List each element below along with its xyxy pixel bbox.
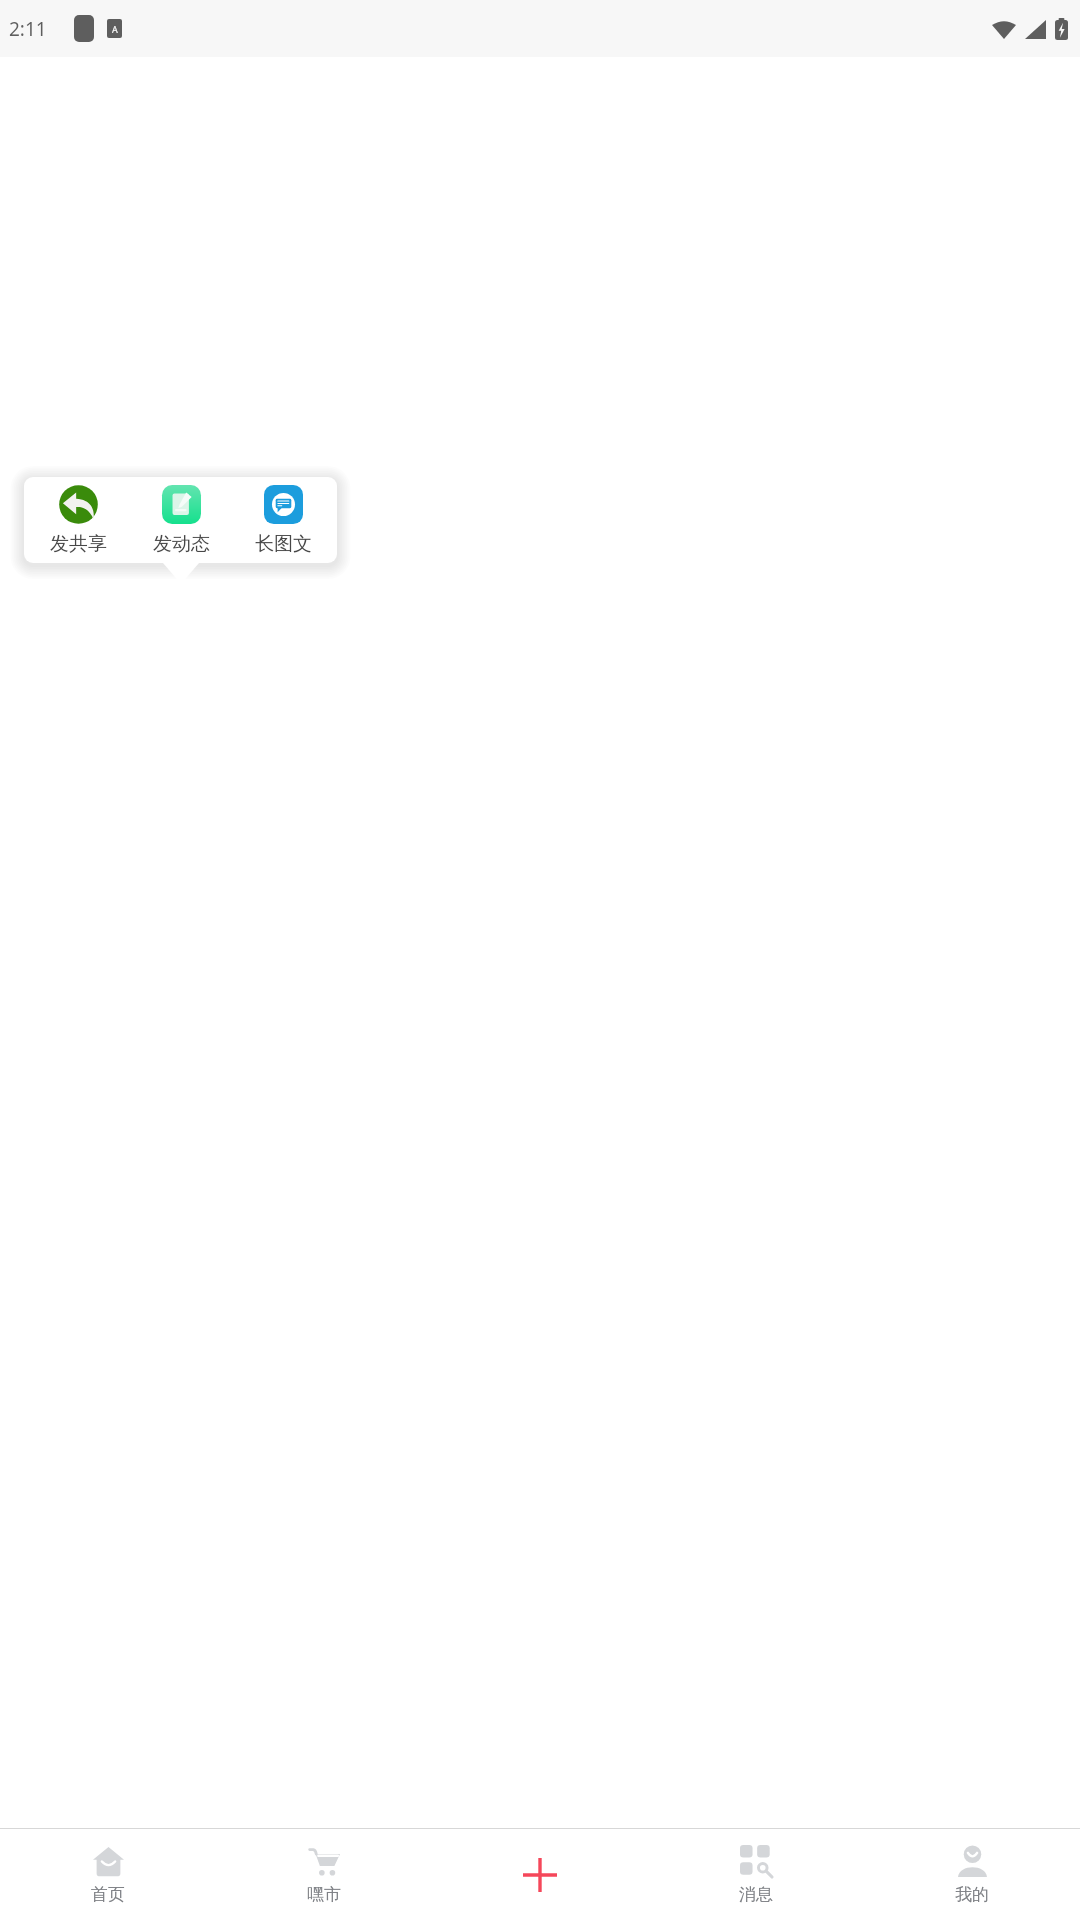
staticText: 我的 — [955, 1884, 989, 1905]
staticText: A — [112, 23, 118, 35]
button[interactable]: 发共享 — [30, 481, 126, 560]
button[interactable]: 我的 — [864, 1829, 1080, 1920]
button[interactable]: 首页 — [0, 1829, 216, 1920]
staticText: 发共享 — [50, 532, 107, 556]
button[interactable]: 发动态 — [133, 481, 229, 560]
button[interactable]: 嘿市 — [216, 1829, 432, 1920]
button[interactable]: 消息 — [648, 1829, 864, 1920]
button[interactable]: 长图文 — [235, 481, 331, 560]
staticText: 长图文 — [255, 532, 312, 556]
staticText: 消息 — [739, 1884, 773, 1905]
button[interactable]: 发布 — [432, 1829, 648, 1920]
staticText: 发动态 — [153, 532, 210, 556]
staticText: 2:11 — [9, 16, 47, 42]
staticText: 嘿市 — [307, 1884, 341, 1905]
staticText: 首页 — [91, 1884, 125, 1905]
